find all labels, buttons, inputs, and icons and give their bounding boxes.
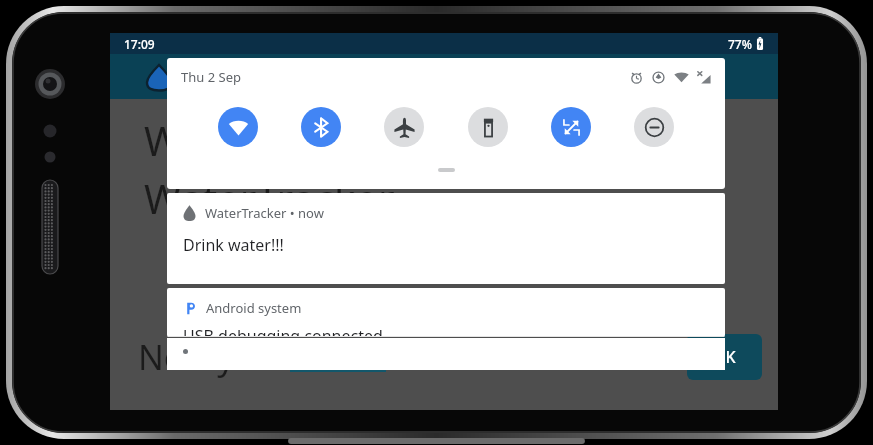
button[interactable]: Bluetooth (301, 107, 341, 147)
button[interactable]: WaterTracker • now (167, 193, 725, 284)
staticText: 77% (728, 36, 752, 52)
staticText: Thu 2 Sep (181, 68, 241, 86)
staticText: Drink water!!! (183, 234, 284, 256)
staticText: 17:09 (124, 36, 155, 52)
staticText: Welcome to WaterTracking (144, 113, 648, 167)
staticText: WaterTracker (144, 171, 395, 225)
staticText: Notify me (138, 334, 295, 380)
button[interactable]: Wi-Fi (218, 107, 258, 147)
button[interactable]: Auto-rotate (551, 107, 591, 147)
button[interactable]: Do not disturb (634, 107, 674, 147)
button[interactable]: Flashlight (468, 107, 508, 147)
staticText: USB debugging connected (183, 325, 383, 337)
button[interactable]: Android system (167, 288, 725, 337)
staticText: WaterTracker • now (205, 204, 324, 222)
button[interactable]: OK (687, 334, 762, 380)
button[interactable] (167, 338, 725, 370)
staticText: OK (713, 346, 736, 368)
staticText: Android system (206, 299, 302, 317)
button[interactable]: Airplane mode (384, 107, 424, 147)
